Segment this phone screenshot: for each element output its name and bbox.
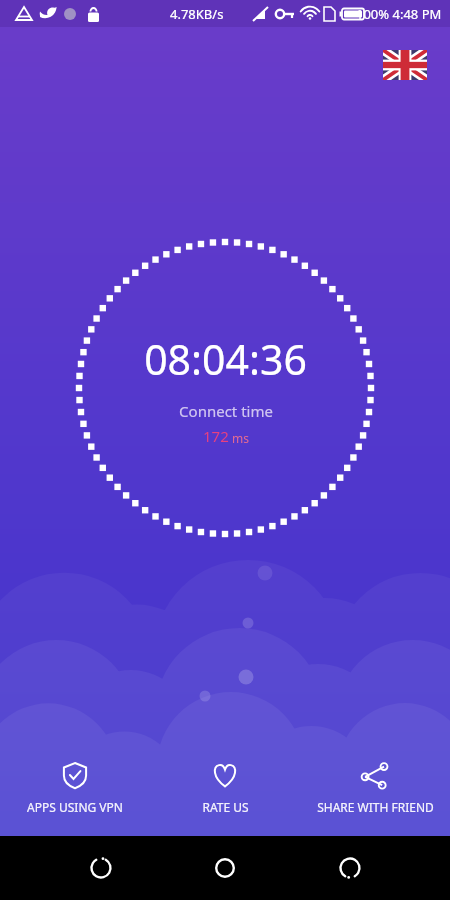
button[interactable]: APPS USING VPN [0, 760, 150, 824]
staticText: ms [232, 430, 249, 446]
button[interactable]: RATE US [150, 760, 300, 824]
button[interactable]: Select country [383, 50, 427, 80]
staticText: SHARE WITH FRIEND [317, 799, 434, 815]
staticText: 08:04:36 [144, 331, 307, 387]
staticText: 4.78KB/s [170, 5, 224, 23]
button[interactable]: Back [326, 844, 374, 892]
staticText: Connect time [179, 401, 273, 421]
staticText: RATE US [202, 799, 249, 815]
button[interactable]: SHARE WITH FRIEND [300, 760, 450, 824]
staticText: 100% 4:48 PM [356, 5, 442, 23]
button[interactable]: Recent apps [77, 844, 125, 892]
button[interactable]: Home [201, 844, 249, 892]
staticText: 172 [203, 426, 229, 446]
button[interactable]: Connection timer [76, 239, 374, 537]
staticText: APPS USING VPN [27, 799, 123, 815]
